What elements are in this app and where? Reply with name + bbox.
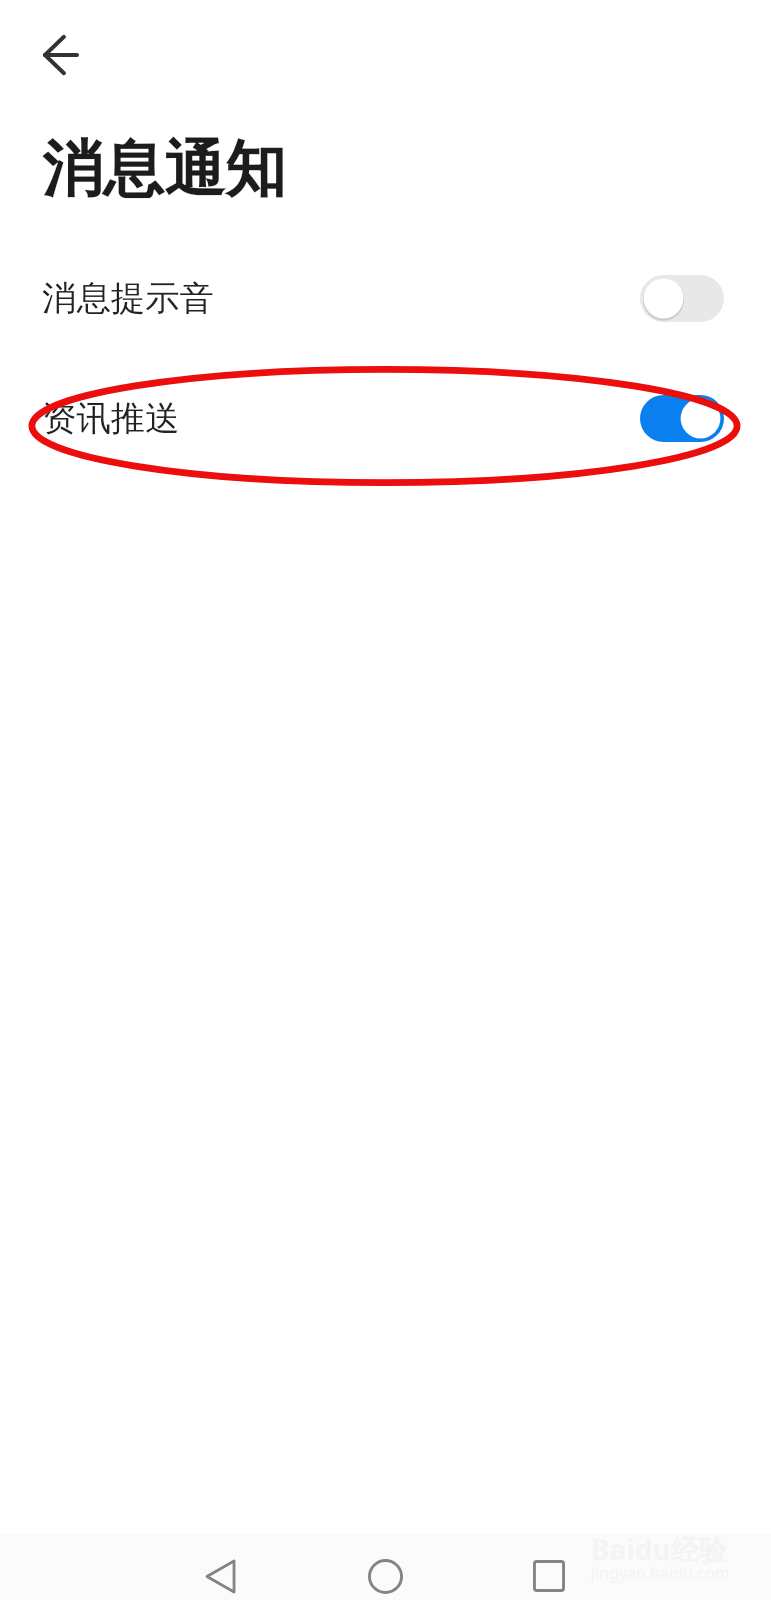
staticText: 消息通知 bbox=[42, 131, 286, 208]
staticText: Baidu经验 bbox=[591, 1530, 727, 1568]
button[interactable]: Home bbox=[359, 1534, 411, 1600]
staticText: 资讯推送 bbox=[42, 397, 180, 440]
button[interactable]: Back bbox=[8, 9, 114, 101]
button[interactable]: Switch off bbox=[640, 275, 724, 322]
button[interactable]: Recents bbox=[523, 1534, 575, 1600]
button[interactable]: Back bbox=[194, 1534, 246, 1600]
button[interactable]: 资讯推送 bbox=[0, 378, 771, 458]
button[interactable]: 消息提示音 bbox=[0, 258, 771, 338]
button[interactable]: Switch on bbox=[640, 395, 724, 442]
staticText: 消息提示音 bbox=[42, 277, 214, 320]
